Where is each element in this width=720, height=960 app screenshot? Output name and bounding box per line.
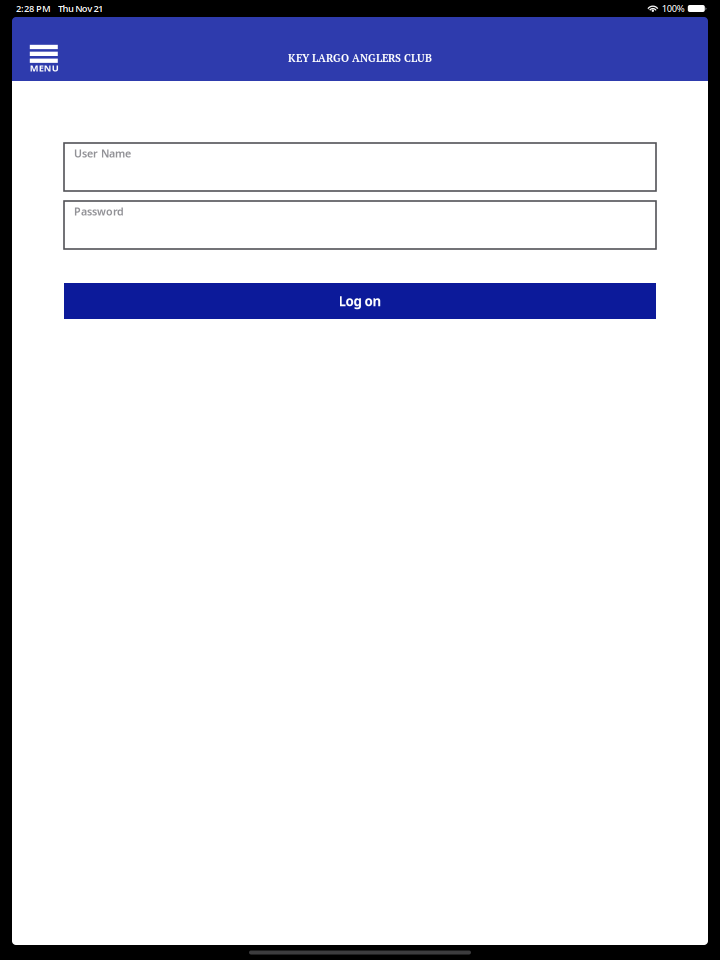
button[interactable]: Password: [64, 201, 656, 249]
staticText: KEY LARGO ANGLERS CLUB: [288, 51, 432, 65]
staticText: Thu Nov 21: [58, 2, 103, 15]
button[interactable]: Log on: [64, 283, 656, 319]
button[interactable]: User Name: [64, 143, 656, 191]
staticText: User Name: [74, 146, 131, 160]
staticText: MENU: [30, 62, 59, 74]
button[interactable]: Menu: [30, 45, 60, 73]
staticText: 100%: [662, 2, 685, 15]
staticText: Password: [74, 204, 124, 218]
staticText: 2:28 PM: [16, 2, 51, 15]
staticText: Log on: [338, 292, 381, 310]
